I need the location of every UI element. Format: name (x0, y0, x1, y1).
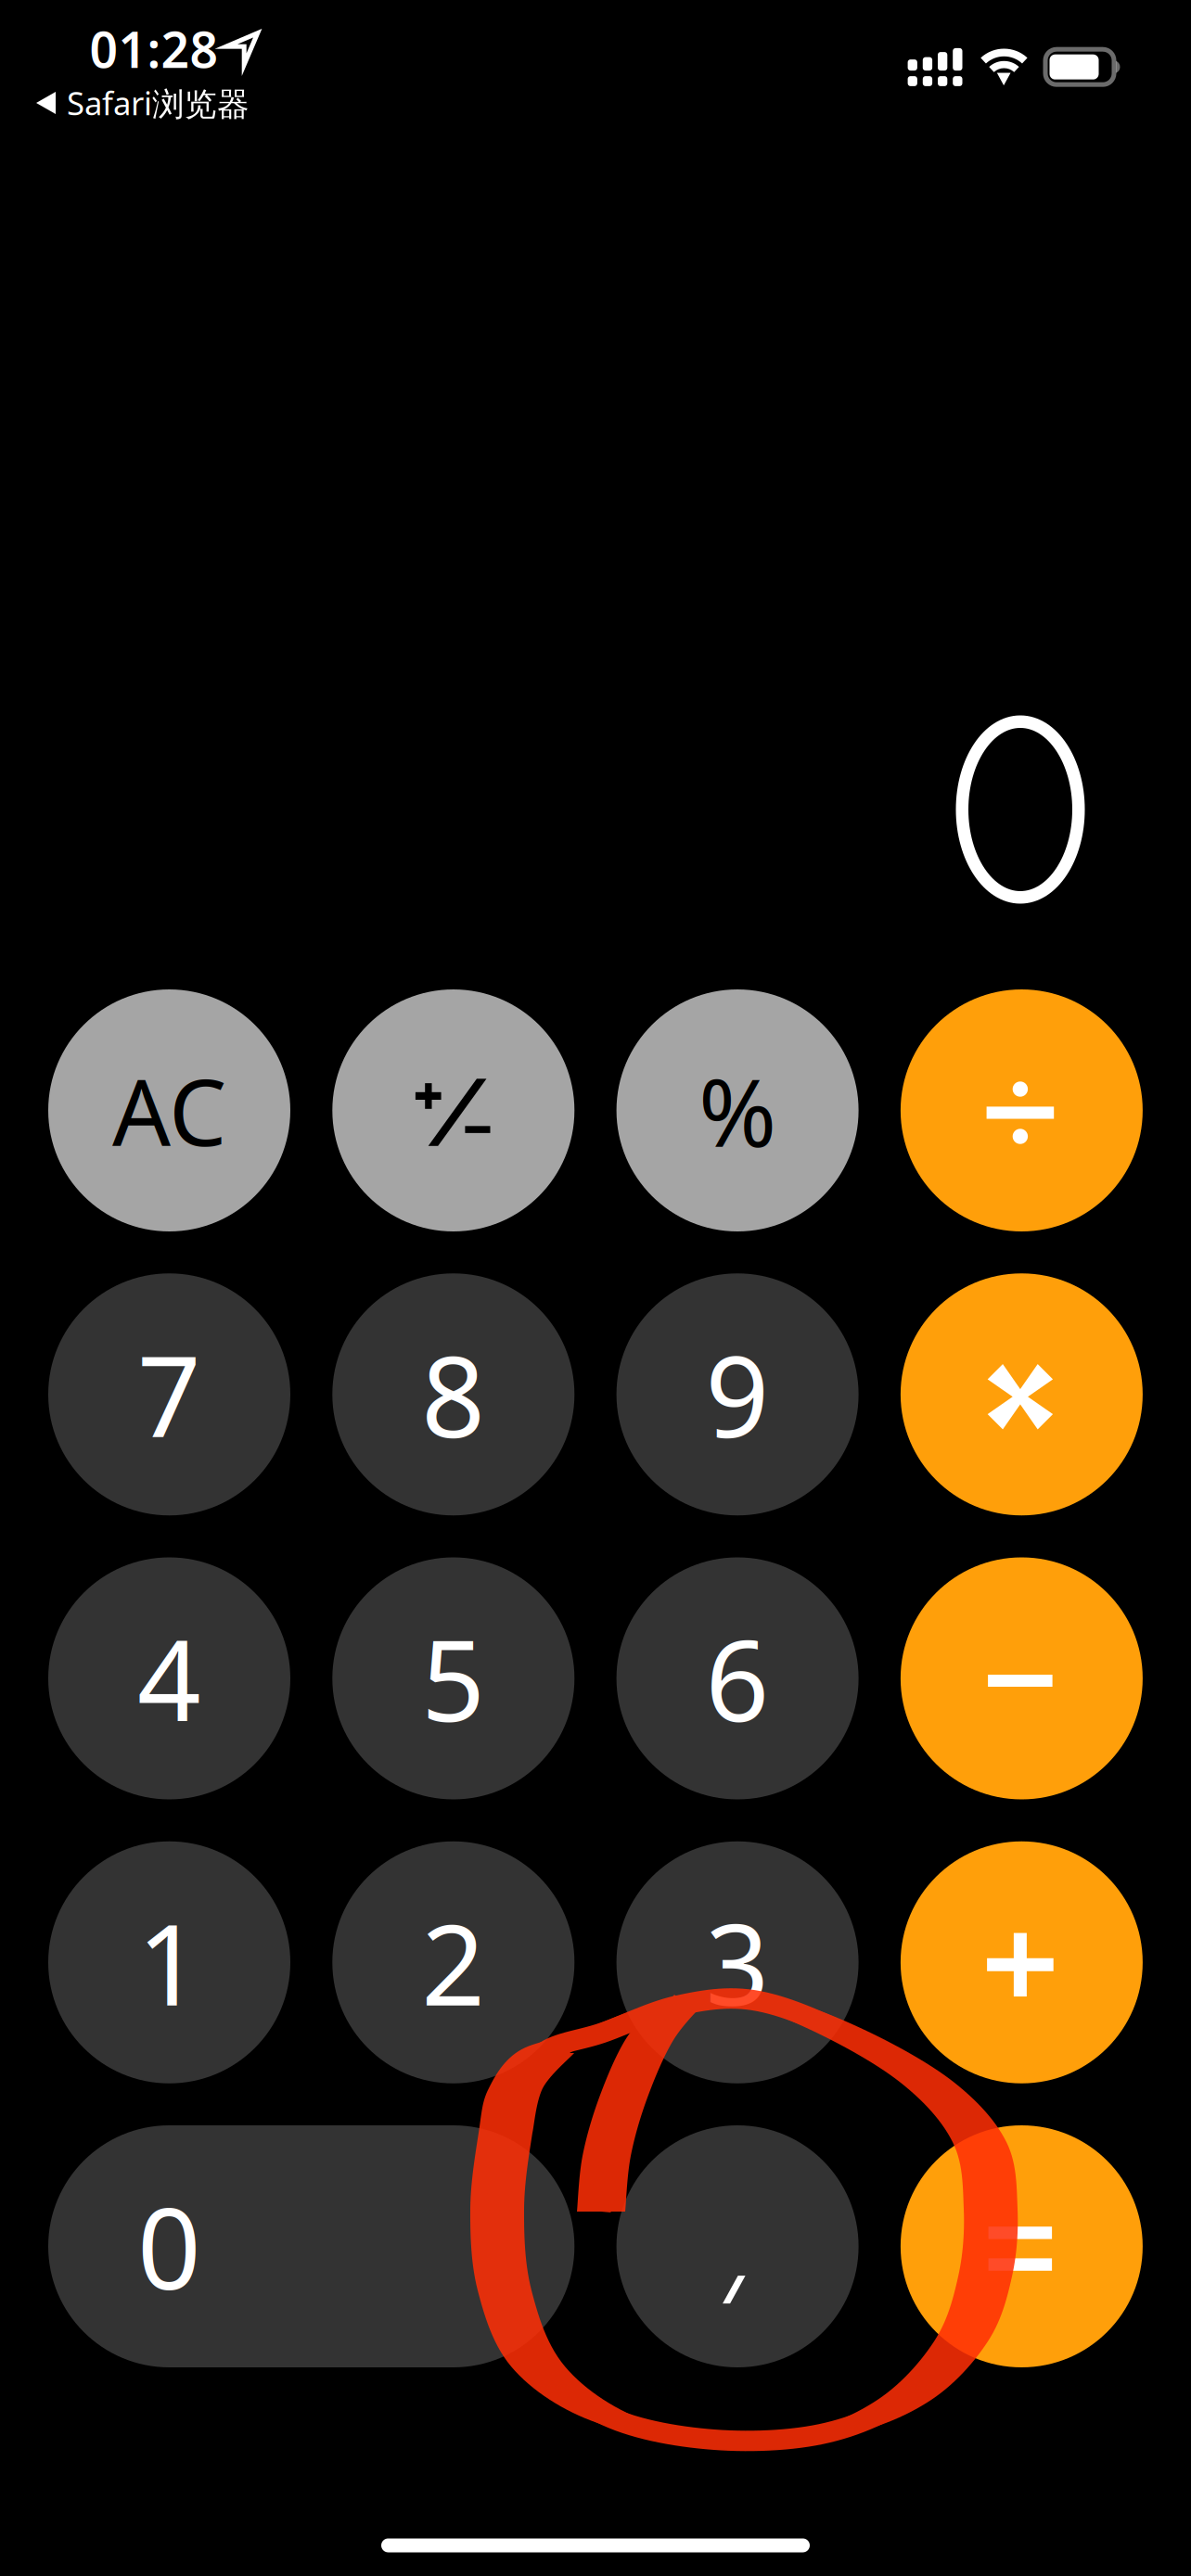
button[interactable]: Equals (901, 2125, 1143, 2367)
button[interactable]: 2 (332, 1841, 574, 2083)
button[interactable]: Safari浏览器 (36, 84, 342, 121)
button[interactable]: Decimal separator (616, 2125, 859, 2367)
button[interactable]: Multiply (901, 1273, 1143, 1515)
button[interactable]: % (616, 989, 859, 1231)
button[interactable]: AC (48, 989, 290, 1231)
staticText: 01:28 (90, 16, 218, 82)
button[interactable]: 8 (332, 1273, 574, 1515)
button[interactable]: 1 (48, 1841, 290, 2083)
button[interactable]: 3 (616, 1841, 859, 2083)
button[interactable]: 9 (616, 1273, 859, 1515)
staticText: 5 (421, 1604, 485, 1752)
button[interactable]: 4 (48, 1557, 290, 1799)
staticText: 4 (137, 1604, 201, 1752)
staticText: Safari浏览器 (67, 82, 250, 124)
staticText: 1 (137, 1889, 201, 2036)
staticText: 0 (137, 2172, 201, 2320)
button[interactable]: 5 (332, 1557, 574, 1799)
staticText: % (699, 1048, 776, 1173)
staticText: 3 (706, 1889, 770, 2036)
button[interactable]: Divide (901, 989, 1143, 1231)
button[interactable]: 6 (616, 1557, 859, 1799)
staticText: 2 (421, 1889, 485, 2036)
staticText: AC (112, 1050, 226, 1171)
button[interactable]: Minus (901, 1557, 1143, 1799)
button[interactable]: 7 (48, 1273, 290, 1515)
staticText: 8 (421, 1321, 485, 1468)
staticText: 7 (137, 1321, 201, 1468)
button[interactable]: 0 (48, 2125, 574, 2367)
button[interactable]: Toggle sign (332, 989, 574, 1231)
staticText: 9 (706, 1321, 770, 1468)
button[interactable]: Plus (901, 1841, 1143, 2083)
staticText: 6 (706, 1604, 770, 1752)
